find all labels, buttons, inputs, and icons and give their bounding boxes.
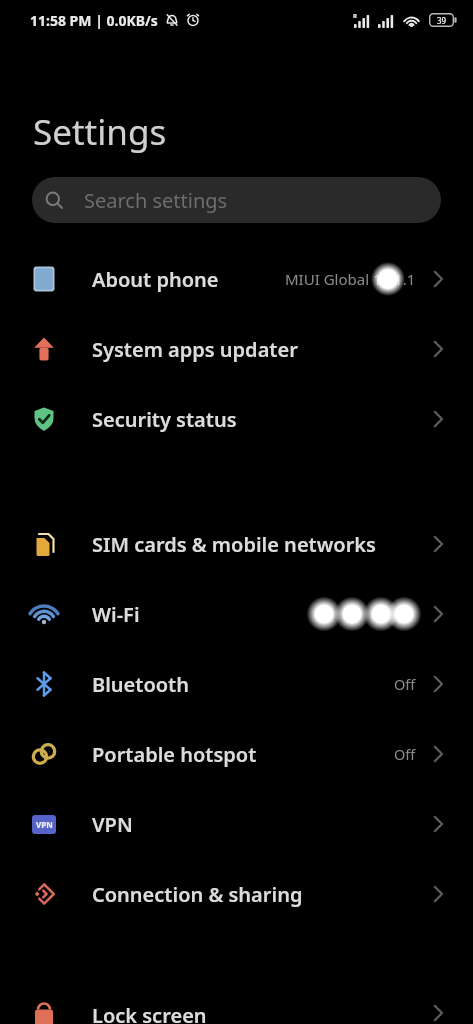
button[interactable]: Connection & sharing [0, 859, 473, 929]
staticText: 39 [437, 15, 447, 26]
button[interactable]: SIM cards & mobile networks [0, 509, 473, 579]
staticText: MIUI Global 11.1.1 [285, 269, 416, 289]
staticText: VPN [36, 819, 53, 830]
staticText: Off [394, 674, 416, 694]
staticText: Connection & sharing [92, 881, 303, 908]
staticText: System apps updater [92, 336, 298, 363]
button[interactable]: Lock screen [0, 1002, 473, 1024]
button[interactable]: Portable hotspot [0, 719, 473, 789]
staticText: Lock screen [92, 1002, 207, 1024]
staticText: Security status [92, 406, 237, 433]
button[interactable]: About phone [0, 244, 473, 314]
staticText: About phone [92, 266, 219, 293]
staticText: R [353, 12, 357, 20]
staticText: SIM cards & mobile networks [92, 531, 376, 558]
button[interactable]: Wi-Fi [0, 579, 473, 649]
staticText: VPN [92, 811, 133, 838]
staticText: Search settings [84, 187, 228, 214]
staticText: Bluetooth [92, 671, 189, 698]
staticText: Settings [33, 108, 167, 156]
button[interactable]: System apps updater [0, 314, 473, 384]
button[interactable]: Security status [0, 384, 473, 454]
button[interactable]: VPN [0, 789, 473, 859]
staticText: Off [394, 744, 416, 764]
staticText: 11:58 PM | 0.0KB/s [30, 11, 158, 30]
button[interactable]: Bluetooth [0, 649, 473, 719]
staticText: Portable hotspot [92, 741, 257, 768]
button[interactable]: Search settings [32, 177, 441, 223]
staticText: Wi-Fi [92, 601, 140, 628]
